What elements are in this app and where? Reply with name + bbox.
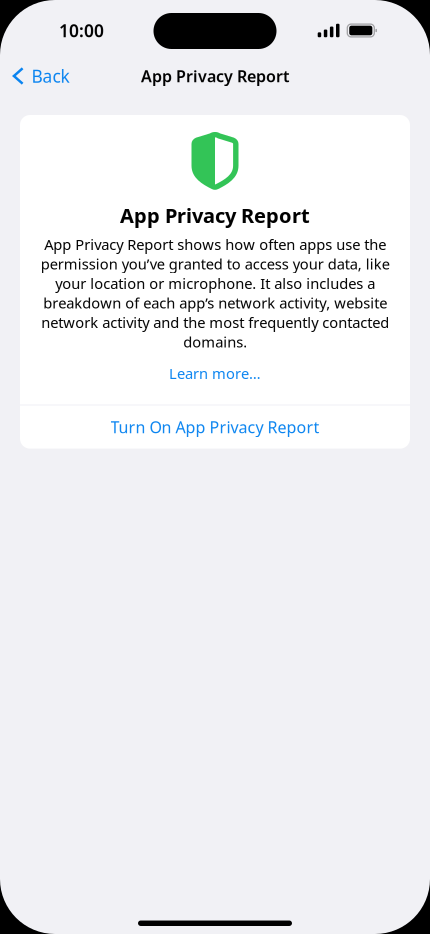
button[interactable]: Turn On App Privacy Report	[20, 406, 410, 449]
staticText: 10:00	[59, 19, 104, 42]
staticText: App Privacy Report	[120, 202, 310, 229]
staticText: Turn On App Privacy Report	[110, 416, 319, 438]
staticText: App Privacy Report shows how often apps …	[40, 235, 389, 351]
button[interactable]: Learn more…	[20, 360, 410, 386]
button[interactable]: Back	[0, 53, 79, 98]
staticText: Back	[31, 64, 69, 87]
staticText: Learn more…	[169, 364, 261, 383]
staticText: App Privacy Report	[141, 65, 289, 87]
